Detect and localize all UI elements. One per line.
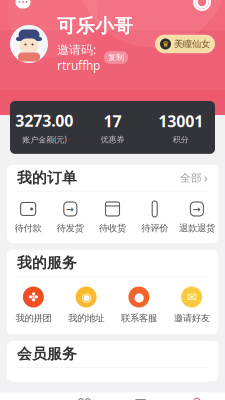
staticText: 我的服务 <box>17 254 77 272</box>
button[interactable]: 购物车 <box>112 397 169 400</box>
button[interactable]: → <box>49 200 91 234</box>
button[interactable]: 我的 <box>169 397 225 400</box>
staticText: › <box>204 170 208 186</box>
staticText: 邀请码: rtruffhp <box>57 41 100 73</box>
staticText: 可乐小哥 <box>57 15 133 37</box>
staticText: → <box>66 204 74 214</box>
staticText: 账户金额(元) <box>22 134 66 145</box>
staticText: 17 <box>103 110 121 132</box>
staticText: 13001 <box>158 110 203 132</box>
staticText: 待付款 <box>15 222 42 234</box>
staticText: 退款退货 <box>179 222 215 234</box>
button[interactable]: 待评价 <box>134 200 176 234</box>
staticText: → <box>193 204 201 214</box>
staticText: 我的订单 <box>17 169 77 187</box>
button[interactable]: ✤ <box>7 286 60 324</box>
staticText: 待收货 <box>99 222 126 234</box>
staticText: 联系客服 <box>121 312 157 324</box>
button[interactable]: ♛ <box>155 35 215 53</box>
staticText: 我的地址 <box>68 312 104 324</box>
button[interactable]: Settings <box>189 0 215 15</box>
staticText: ✉ <box>187 290 197 304</box>
staticText: 美瞳仙女 <box>174 38 210 50</box>
staticText: 待评价 <box>141 222 168 234</box>
button[interactable]: 待付款 <box>7 200 49 234</box>
button[interactable]: ◉ <box>60 286 113 324</box>
button[interactable]: ● <box>112 286 165 324</box>
button[interactable]: Messages <box>10 0 36 15</box>
staticText: 全部 <box>180 171 202 184</box>
staticText: ● <box>134 290 144 304</box>
staticText: 优惠券 <box>100 135 124 144</box>
staticText: 3273.00 <box>15 110 73 131</box>
button[interactable]: 17 <box>78 110 147 144</box>
button[interactable]: 复制 <box>104 51 128 64</box>
staticText: 会员服务 <box>17 345 77 363</box>
button[interactable]: → <box>176 200 218 234</box>
staticText: ♛ <box>162 39 169 48</box>
staticText: ◉ <box>81 290 91 304</box>
button[interactable]: 3273.00 <box>10 110 78 145</box>
staticText: ✤ <box>28 290 38 304</box>
staticText: 待发货 <box>57 222 84 234</box>
staticText: 复制 <box>108 52 124 62</box>
button[interactable]: 待收货 <box>91 200 134 234</box>
button[interactable]: 13001 <box>147 110 215 144</box>
staticText: 积分 <box>173 135 189 144</box>
button[interactable]: 分类 <box>56 397 112 400</box>
staticText: 邀请好友 <box>174 312 210 324</box>
staticText: 我的拼团 <box>15 312 51 324</box>
button[interactable]: 全部 <box>180 170 208 186</box>
button[interactable]: ✉ <box>165 286 218 324</box>
